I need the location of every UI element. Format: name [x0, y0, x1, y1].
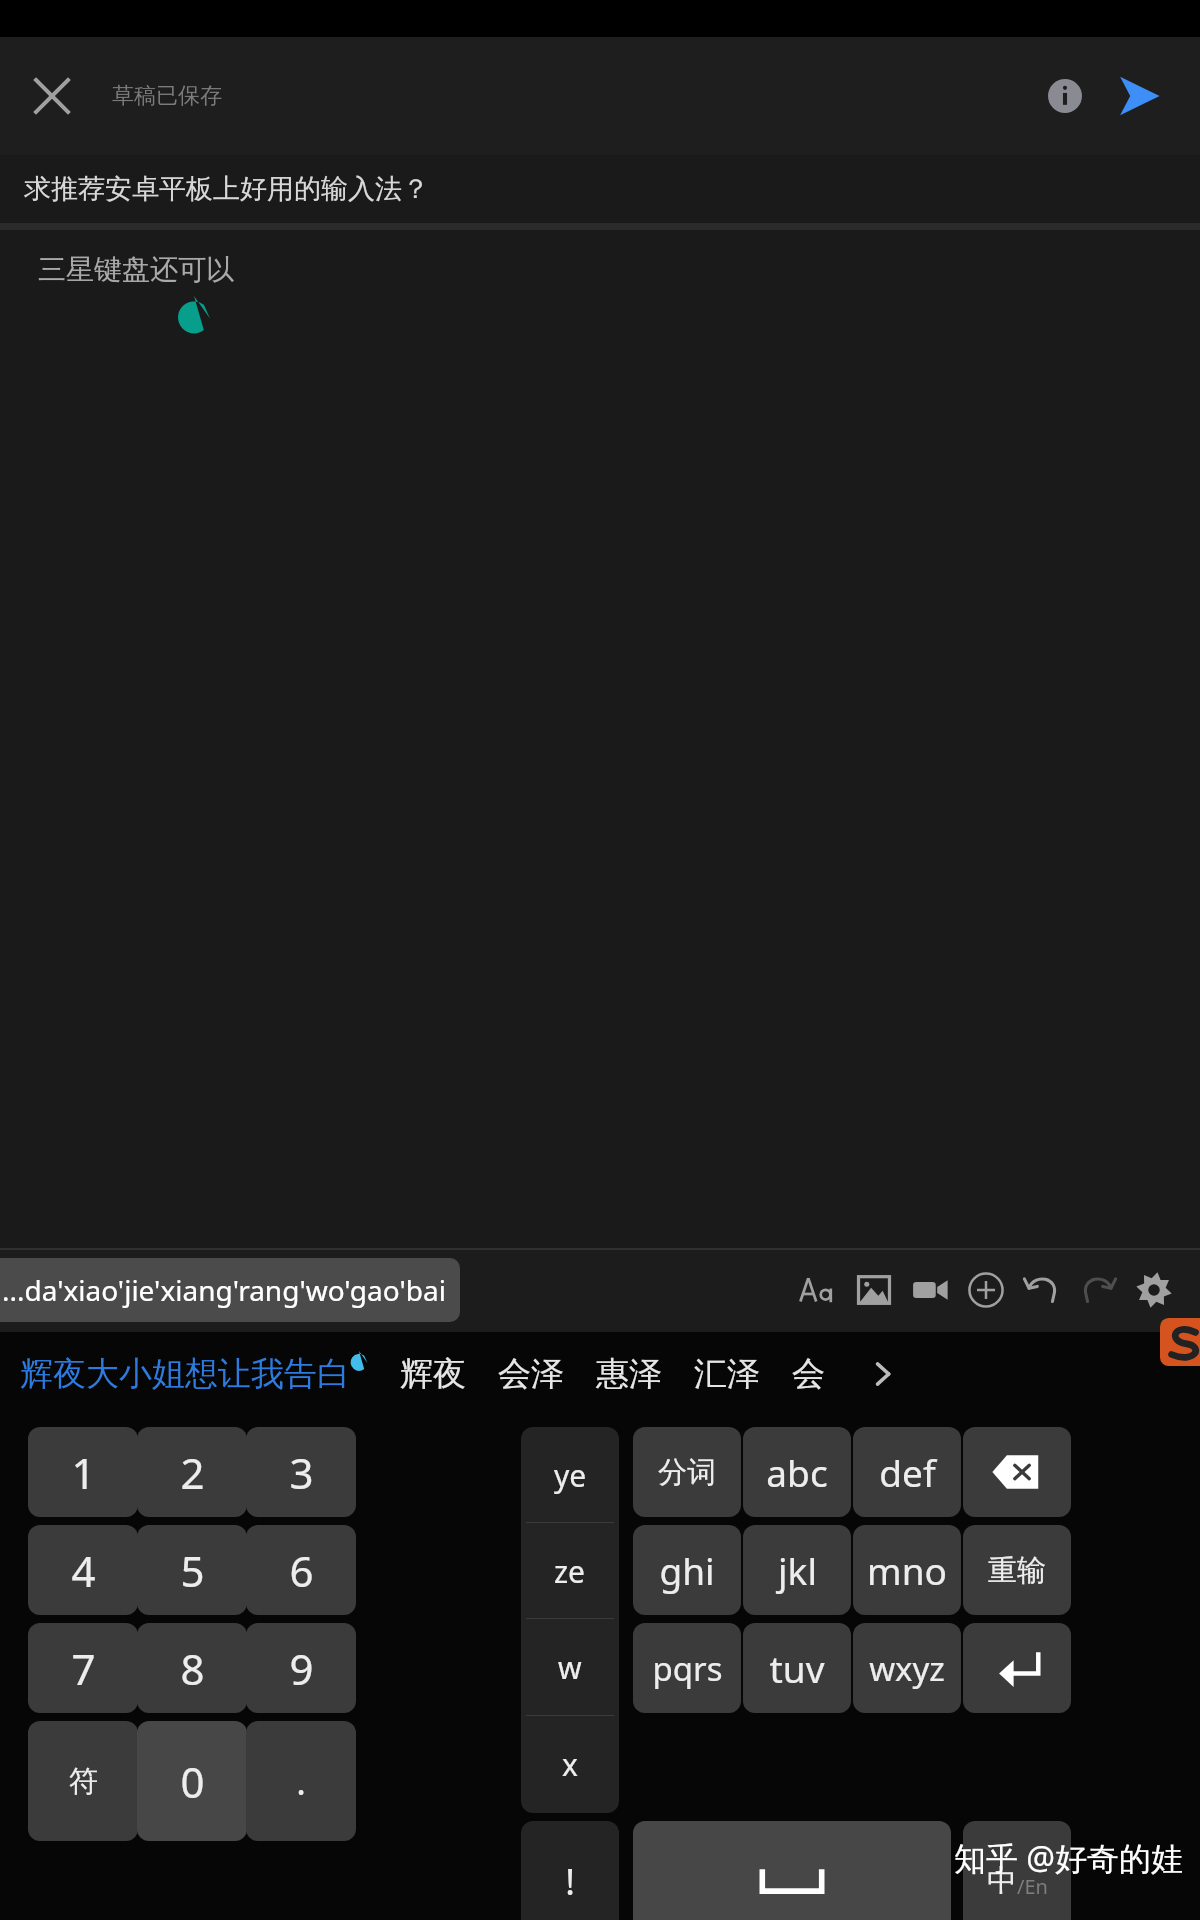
button[interactable]: ! [521, 1821, 619, 1920]
staticText: ...da'xiao'jie'xiang'rang'wo'gao'bai [2, 1271, 446, 1309]
staticText: 三星键盘还可以 [38, 252, 234, 287]
button[interactable]: Send [1102, 59, 1176, 133]
staticText: 知乎 @好奇的娃 [954, 1836, 1184, 1880]
staticText: 重输 [988, 1552, 1046, 1589]
staticText: 5 [180, 1542, 205, 1599]
button[interactable]: 6 [246, 1525, 356, 1615]
staticText: 中 [987, 1862, 1017, 1900]
button[interactable]: pqrs [633, 1623, 741, 1713]
button[interactable]: 7 [28, 1623, 138, 1713]
button[interactable]: Enter [963, 1623, 1071, 1713]
button[interactable]: 2 [137, 1427, 247, 1517]
staticText: 6 [289, 1542, 314, 1599]
button[interactable]: ...da'xiao'jie'xiang'rang'wo'gao'bai [0, 1258, 460, 1322]
staticText: 汇泽 [694, 1353, 760, 1395]
button[interactable]: 分词 [633, 1427, 741, 1517]
button[interactable]: Insert image [846, 1262, 902, 1318]
staticText: def [879, 1447, 936, 1497]
button[interactable]: Add [958, 1262, 1014, 1318]
staticText: ze [554, 1551, 586, 1592]
button[interactable]: 汇泽 [694, 1353, 760, 1395]
staticText: 9 [289, 1640, 314, 1697]
staticText: ye [554, 1455, 587, 1496]
button[interactable]: 3 [246, 1427, 356, 1517]
button[interactable]: 会 [792, 1353, 825, 1395]
button[interactable]: Text format [790, 1262, 846, 1318]
button[interactable]: ye [521, 1427, 619, 1523]
button[interactable]: w [521, 1619, 619, 1716]
button[interactable]: Close [16, 60, 88, 132]
staticText: 3 [289, 1444, 314, 1501]
button[interactable]: 辉夜 [400, 1353, 466, 1395]
staticText: x [562, 1744, 578, 1785]
staticText: jkl [778, 1545, 817, 1595]
button[interactable]: 9 [246, 1623, 356, 1713]
staticText: ghi [659, 1545, 715, 1595]
staticText: abc [766, 1447, 828, 1497]
staticText: w [558, 1647, 582, 1688]
staticText: 0 [180, 1753, 205, 1810]
button[interactable]: Switch input language [963, 1821, 1071, 1920]
button[interactable]: x [521, 1716, 619, 1813]
staticText: 1 [71, 1444, 96, 1501]
button[interactable]: 符 [28, 1721, 138, 1841]
button[interactable]: 1 [28, 1427, 138, 1517]
button[interactable]: Redo [1070, 1262, 1126, 1318]
button[interactable]: 会泽 [498, 1353, 564, 1395]
button[interactable]: 0 [137, 1721, 247, 1841]
staticText: 分词 [658, 1454, 716, 1491]
button[interactable]: abc [743, 1427, 851, 1517]
button[interactable]: 辉夜大小姐想让我告白 [20, 1353, 350, 1395]
staticText: 2 [180, 1444, 205, 1501]
staticText: 草稿已保存 [112, 82, 222, 110]
button[interactable]: ghi [633, 1525, 741, 1615]
button[interactable]: Space [633, 1821, 951, 1920]
staticText: 符 [69, 1763, 98, 1800]
button[interactable]: tuv [743, 1623, 851, 1713]
staticText: /En [1017, 1873, 1048, 1900]
button[interactable]: . [246, 1721, 356, 1841]
staticText: mno [867, 1545, 947, 1595]
button[interactable]: ze [521, 1523, 619, 1619]
staticText: 求推荐安卓平板上好用的输入法？ [24, 172, 429, 206]
button[interactable]: 5 [137, 1525, 247, 1615]
button[interactable]: jkl [743, 1525, 851, 1615]
button[interactable]: def [853, 1427, 961, 1517]
button[interactable]: Info [1028, 59, 1102, 133]
button[interactable]: 惠泽 [596, 1353, 662, 1395]
staticText: pqrs [652, 1646, 723, 1691]
staticText: 辉夜大小姐想让我告白 [20, 1353, 350, 1395]
staticText: ! [565, 1857, 575, 1906]
staticText: 4 [71, 1542, 96, 1599]
staticText: 7 [71, 1640, 96, 1697]
button[interactable]: wxyz [853, 1623, 961, 1713]
staticText: tuv [769, 1643, 825, 1693]
staticText: 会泽 [498, 1353, 564, 1395]
button[interactable]: Backspace [963, 1427, 1071, 1517]
staticText: wxyz [869, 1646, 945, 1691]
staticText: 惠泽 [596, 1353, 662, 1395]
button[interactable]: Settings [1126, 1262, 1182, 1318]
button[interactable]: 重输 [963, 1525, 1071, 1615]
button[interactable]: 4 [28, 1525, 138, 1615]
staticText: 辉夜 [400, 1353, 466, 1395]
staticText: . [296, 1757, 306, 1806]
button[interactable]: Undo [1014, 1262, 1070, 1318]
button[interactable]: Insert video [902, 1262, 958, 1318]
button[interactable]: 8 [137, 1623, 247, 1713]
button[interactable]: mno [853, 1525, 961, 1615]
button[interactable]: More candidates [853, 1345, 911, 1403]
staticText: 会 [792, 1353, 825, 1395]
staticText: 8 [180, 1640, 205, 1697]
